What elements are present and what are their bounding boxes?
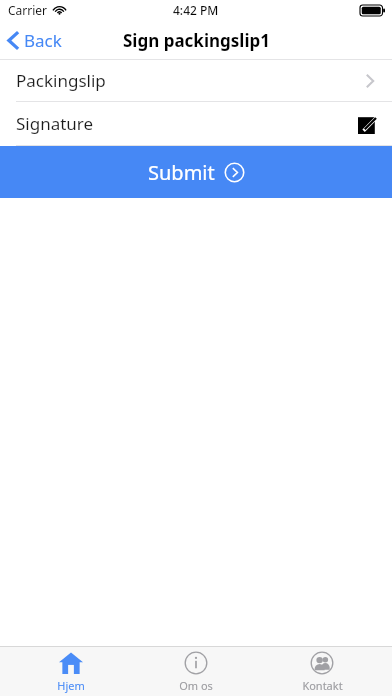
button[interactable]: Submit xyxy=(0,146,392,198)
staticText: Signature xyxy=(16,112,94,135)
staticText: Back xyxy=(24,29,62,52)
button[interactable]: Kontakt xyxy=(267,647,377,696)
button[interactable]: Back xyxy=(0,20,72,60)
staticText: Submit xyxy=(148,159,215,186)
staticText: Hjem xyxy=(57,678,85,693)
button[interactable]: Om os xyxy=(141,647,251,696)
other: Edit signature xyxy=(358,114,378,134)
staticText: Sign packingslip1 xyxy=(123,29,270,52)
staticText: 4:42 PM xyxy=(173,2,219,18)
staticText: Kontakt xyxy=(302,678,343,693)
staticText: Om os xyxy=(179,678,213,693)
staticText: Carrier xyxy=(8,2,48,18)
button[interactable]: Packingslip xyxy=(0,60,392,101)
button[interactable]: Hjem xyxy=(16,647,126,696)
staticText: Packingslip xyxy=(16,69,106,92)
button[interactable]: Signature xyxy=(0,102,392,145)
